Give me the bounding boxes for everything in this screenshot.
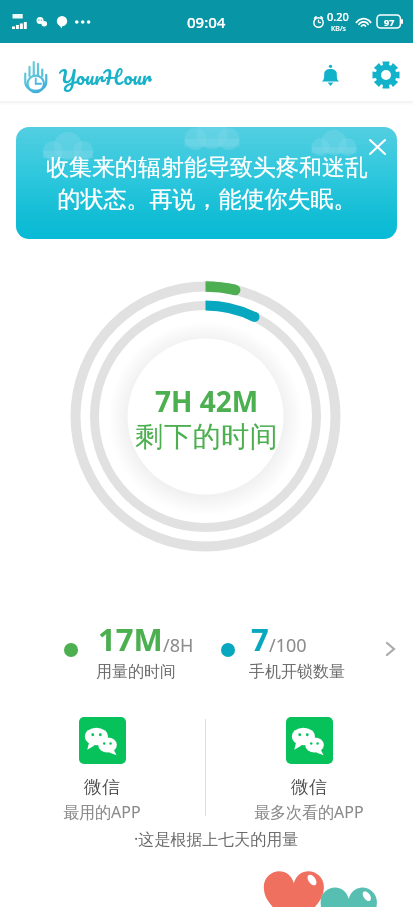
button[interactable]: Notifications — [308, 53, 352, 97]
staticText: 09:04 — [187, 12, 226, 32]
button[interactable]: 收集来的辐射能导致头疼和迷乱 的状态。再说，能使你失眠。 — [16, 127, 397, 239]
staticText: 微信 — [84, 776, 120, 799]
staticText: 97 — [384, 16, 395, 28]
staticText: 0.20 — [327, 9, 349, 24]
button[interactable]: Close — [361, 131, 393, 163]
staticText: 剩下的时间 — [135, 419, 278, 454]
staticText: 最用的APP — [63, 801, 141, 823]
staticText: 微信 — [291, 776, 327, 799]
staticText: 17M — [98, 618, 163, 660]
staticText: 用量的时间 — [96, 662, 176, 682]
staticText: /100 — [269, 633, 307, 658]
button[interactable]: 17M — [58, 600, 210, 688]
staticText: /8H — [163, 633, 194, 658]
button[interactable]: 7 — [215, 600, 367, 688]
button[interactable]: More details — [372, 631, 408, 667]
staticText: KB/s — [331, 24, 346, 34]
staticText: 7 — [251, 618, 269, 660]
staticText: 收集来的辐射能导致头疼和迷乱 的状态。再说，能使你失眠。 — [46, 153, 368, 214]
staticText: 手机开锁数量 — [249, 662, 345, 682]
staticText: ·这是根据上七天的用量 — [134, 828, 299, 850]
button[interactable]: 微信 — [233, 705, 385, 820]
staticText: YourHour — [59, 59, 152, 94]
staticText: 7H 42M — [155, 382, 259, 420]
button[interactable]: 微信 — [26, 705, 178, 820]
staticText: 最多次看的APP — [254, 801, 364, 823]
button[interactable]: Settings — [364, 53, 408, 97]
